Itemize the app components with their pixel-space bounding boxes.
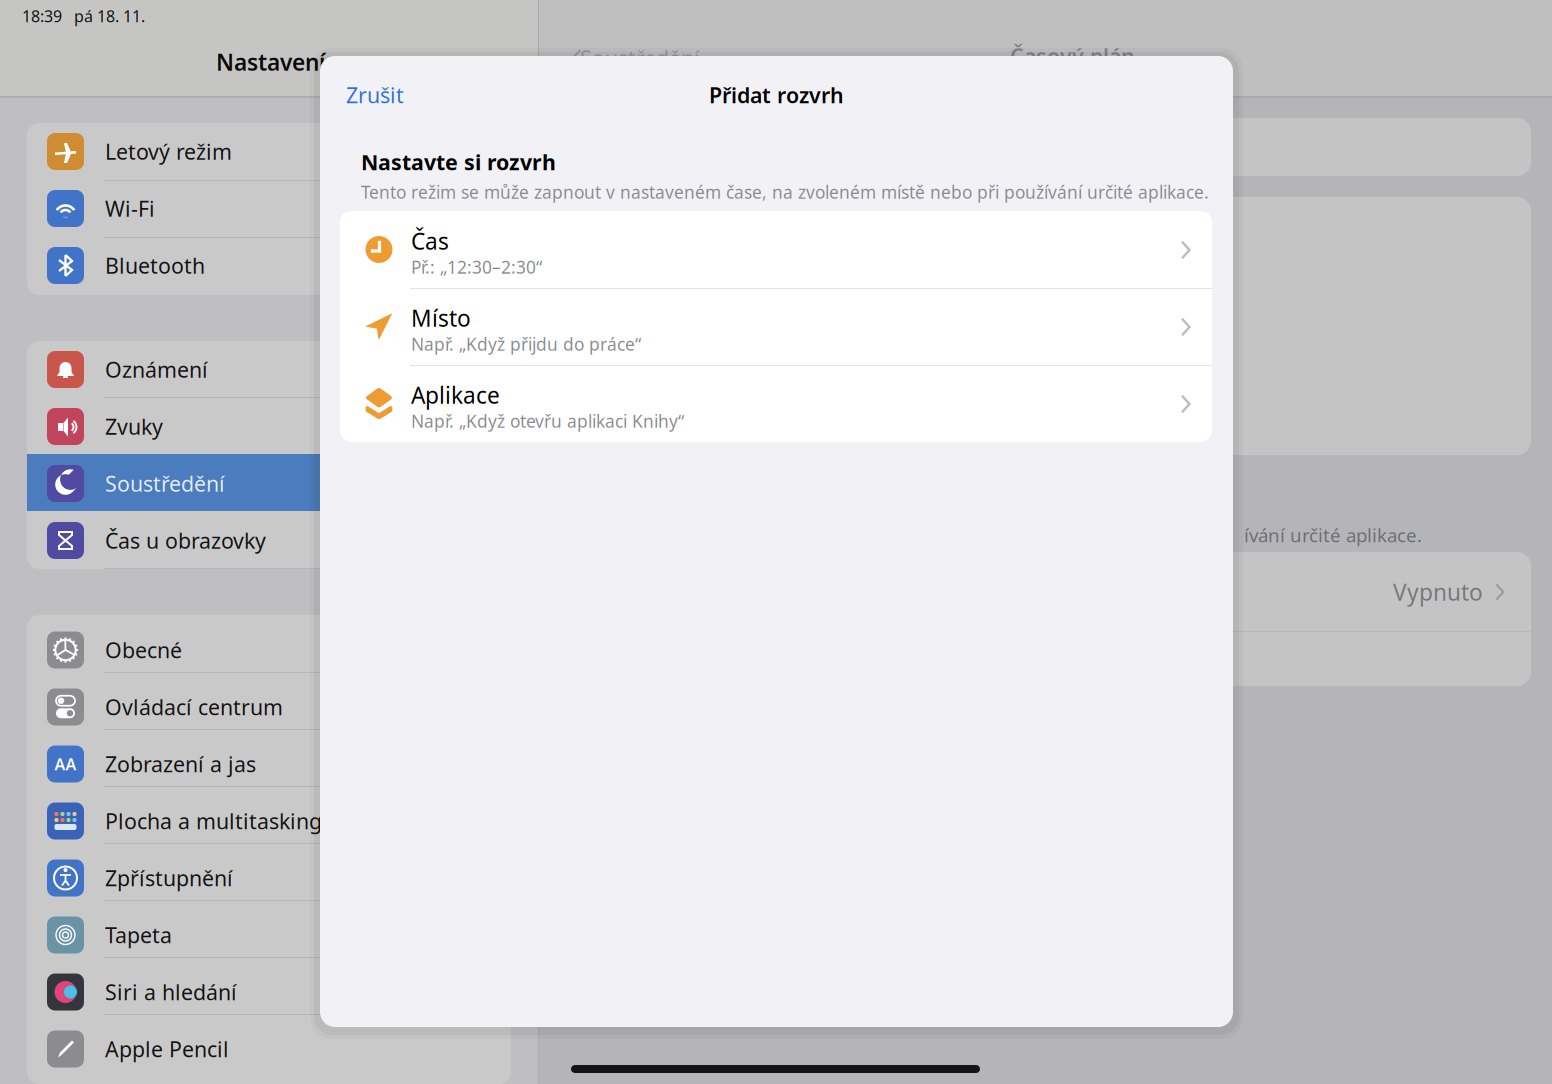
staticText: Čas u obrazovky — [105, 526, 266, 555]
staticText: Siri a hledání — [105, 978, 237, 1006]
staticText: Např. „Když otevřu aplikaci Knihy“ — [411, 409, 684, 432]
staticText: Plocha a multitasking — [105, 807, 322, 835]
button[interactable]: Čas u obrazovky — [27, 512, 511, 569]
staticText: Přidat rozvrh — [709, 81, 844, 109]
button[interactable]: Letový režim — [27, 123, 511, 180]
button[interactable]: Siri a hledání — [27, 963, 511, 1020]
button[interactable]: Zrušit — [340, 78, 460, 112]
button[interactable]: Ovládací centrum — [27, 678, 511, 735]
button[interactable]: Tapeta — [27, 906, 511, 963]
button[interactable]: Wi-Fi — [27, 180, 511, 237]
button[interactable]: Místo — [340, 288, 1212, 365]
button[interactable]: Obecné — [27, 621, 511, 678]
button[interactable]: Bluetooth — [27, 237, 511, 294]
staticText: Tento režim se může zapnout v nastaveném… — [361, 180, 1209, 203]
staticText: Obecné — [105, 636, 182, 664]
staticText: ívání určité aplikace. — [1244, 523, 1422, 547]
staticText: Čas — [411, 226, 449, 256]
staticText: Místo — [411, 303, 471, 333]
staticText: 18:39 pá 18. 11. — [22, 5, 145, 27]
button[interactable]: Apple Pencil — [27, 1020, 511, 1077]
button[interactable]: Plocha a multitasking — [27, 792, 511, 849]
staticText: Nastavte si rozvrh — [361, 148, 556, 176]
staticText: Bluetooth — [105, 251, 205, 280]
button[interactable]: Zpřístupnění — [27, 849, 511, 906]
staticText: Nastavení — [216, 47, 325, 77]
staticText: Aplikace — [411, 380, 500, 410]
staticText: Zvuky — [105, 412, 163, 441]
staticText: Tapeta — [105, 921, 172, 949]
staticText: Ovládací centrum — [105, 693, 283, 721]
button[interactable]: Soustředění — [27, 455, 511, 512]
staticText: Wi-Fi — [105, 194, 155, 223]
button[interactable]: Aplikace — [340, 365, 1212, 442]
staticText: Např. „Když přijdu do práce“ — [411, 332, 641, 355]
staticText: AA — [54, 753, 76, 775]
button[interactable]: Oznámení — [27, 341, 511, 398]
button[interactable]: Zvuky — [27, 398, 511, 455]
staticText: Př.: „12:30–2:30“ — [411, 255, 542, 278]
staticText: Apple Pencil — [105, 1035, 229, 1063]
staticText: Vypnuto — [1393, 577, 1483, 607]
staticText: Zobrazení a jas — [105, 750, 256, 778]
button[interactable]: AA — [27, 735, 511, 792]
staticText: Zpřístupnění — [105, 864, 233, 892]
staticText: Letový režim — [105, 137, 232, 166]
staticText: Oznámení — [105, 355, 208, 384]
staticText: Soustředění — [105, 469, 225, 498]
staticText: Zrušit — [346, 81, 404, 109]
staticText: Časový plán — [1010, 42, 1135, 70]
button[interactable]: Čas — [340, 211, 1212, 288]
staticText: Soustředění — [580, 44, 700, 72]
